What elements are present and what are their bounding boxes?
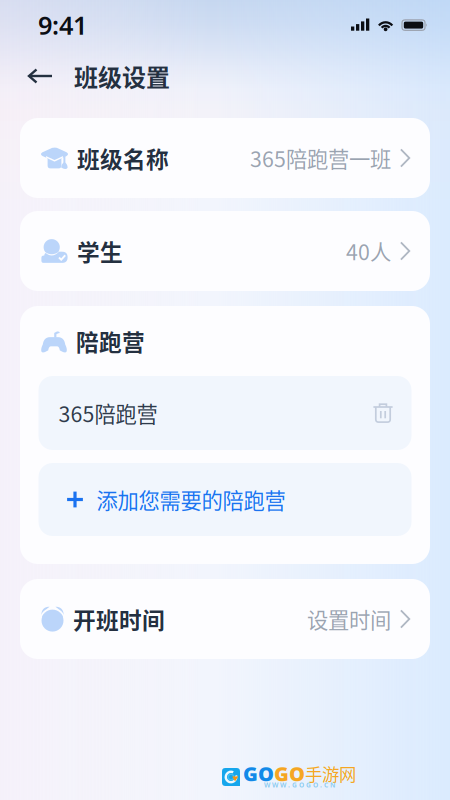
staticText: 学生 <box>77 235 123 267</box>
staticText: W W W . G O G O . C N <box>264 781 335 789</box>
staticText: 9:41 <box>38 8 87 42</box>
staticText: 添加您需要的陪跑营 <box>96 484 285 515</box>
staticText: 手游网 <box>305 761 356 786</box>
staticText: 365陪跑营一班 <box>250 143 391 173</box>
staticText: 开班时间 <box>73 603 165 635</box>
staticText: 陪跑营 <box>76 325 145 357</box>
button[interactable]: 返回 <box>20 56 60 96</box>
button[interactable]: 开班时间 <box>20 579 430 659</box>
button[interactable]: 365陪跑营 <box>38 376 411 450</box>
staticText: 班级设置 <box>74 59 170 93</box>
staticText: 班级名称 <box>77 142 169 174</box>
staticText: GO <box>243 760 274 787</box>
staticText: 40人 <box>346 236 391 266</box>
staticText: 365陪跑营 <box>58 398 157 428</box>
button[interactable]: 班级名称 <box>20 118 430 198</box>
button[interactable]: 添加您需要的陪跑营 <box>38 463 411 536</box>
staticText: 设置时间 <box>307 604 391 634</box>
button[interactable]: 学生 <box>20 211 430 291</box>
staticText: GO <box>274 760 305 787</box>
